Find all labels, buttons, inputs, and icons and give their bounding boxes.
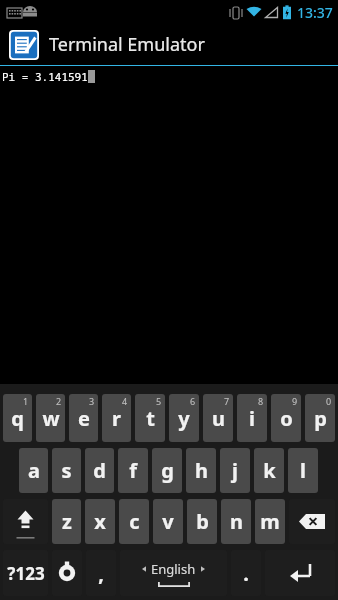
button[interactable]: Settings xyxy=(52,550,82,596)
staticText: i xyxy=(249,405,255,432)
button[interactable]: f xyxy=(118,448,148,493)
button[interactable]: a xyxy=(19,448,48,493)
staticText: c xyxy=(129,508,140,535)
button[interactable]: Pi = 3.141591 xyxy=(0,66,338,384)
staticText: q xyxy=(11,405,24,432)
staticText: d xyxy=(93,457,106,484)
button[interactable]: t xyxy=(135,394,165,442)
staticText: y xyxy=(178,405,190,432)
staticText: 8 xyxy=(258,395,264,407)
staticText: 13:37 xyxy=(297,3,333,22)
button[interactable]: x xyxy=(85,499,115,544)
staticText: s xyxy=(61,457,72,484)
button[interactable]: g xyxy=(152,448,182,493)
button[interactable]: Backspace xyxy=(289,499,335,544)
staticText: Pi = 3.141591 xyxy=(2,69,88,84)
staticText: a xyxy=(28,457,40,484)
button[interactable]: y xyxy=(169,394,199,442)
staticText: t xyxy=(146,405,155,432)
button[interactable]: n xyxy=(221,499,251,544)
button[interactable]: m xyxy=(255,499,285,544)
staticText: x xyxy=(94,508,106,535)
staticText: r xyxy=(112,405,121,432)
button[interactable]: q xyxy=(3,394,32,442)
staticText: 2 xyxy=(56,395,62,407)
staticText: m xyxy=(260,508,280,535)
staticText: u xyxy=(212,405,225,432)
staticText: k xyxy=(263,457,276,484)
button[interactable]: Enter xyxy=(265,550,335,596)
staticText: o xyxy=(280,405,293,432)
button[interactable]: u xyxy=(203,394,233,442)
button[interactable]: s xyxy=(52,448,81,493)
staticText: v xyxy=(162,508,174,535)
button[interactable]: z xyxy=(52,499,81,544)
staticText: 5 xyxy=(156,395,162,407)
button[interactable]: h xyxy=(186,448,216,493)
button[interactable]: . xyxy=(231,550,261,596)
button[interactable]: c xyxy=(119,499,149,544)
staticText: b xyxy=(196,508,209,535)
staticText: 6 xyxy=(190,395,196,407)
staticText: 0 xyxy=(326,395,332,407)
button[interactable]: k xyxy=(254,448,284,493)
button[interactable]: w xyxy=(36,394,65,442)
staticText: Terminal Emulator xyxy=(49,32,205,57)
staticText: g xyxy=(161,457,174,484)
button[interactable]: ?123 xyxy=(3,550,48,596)
staticText: 7 xyxy=(224,395,230,407)
staticText: z xyxy=(62,508,72,535)
button[interactable]: Space xyxy=(120,550,227,596)
button[interactable]: p xyxy=(305,394,335,442)
button[interactable]: Terminal Emulator xyxy=(0,24,338,65)
staticText: . xyxy=(243,560,249,587)
staticText: l xyxy=(300,457,306,484)
button[interactable]: o xyxy=(271,394,301,442)
button[interactable]: e xyxy=(69,394,98,442)
staticText: , xyxy=(98,560,104,587)
staticText: n xyxy=(230,508,243,535)
button[interactable]: v xyxy=(153,499,183,544)
staticText: h xyxy=(195,457,208,484)
staticText: w xyxy=(42,405,60,432)
staticText: English xyxy=(151,560,196,578)
button[interactable]: i xyxy=(237,394,267,442)
staticText: j xyxy=(232,457,238,484)
staticText: p xyxy=(314,405,327,432)
staticText: 1 xyxy=(23,395,29,407)
staticText: ?123 xyxy=(7,562,45,585)
button[interactable]: r xyxy=(102,394,131,442)
staticText: 9 xyxy=(292,395,298,407)
button[interactable]: , xyxy=(86,550,116,596)
staticText: 4 xyxy=(122,395,128,407)
button[interactable]: j xyxy=(220,448,250,493)
button[interactable]: d xyxy=(85,448,114,493)
staticText: f xyxy=(129,457,137,484)
staticText: e xyxy=(78,405,90,432)
button[interactable]: Shift xyxy=(3,499,48,544)
button[interactable]: l xyxy=(288,448,318,493)
staticText: 3 xyxy=(89,395,95,407)
button[interactable]: b xyxy=(187,499,217,544)
